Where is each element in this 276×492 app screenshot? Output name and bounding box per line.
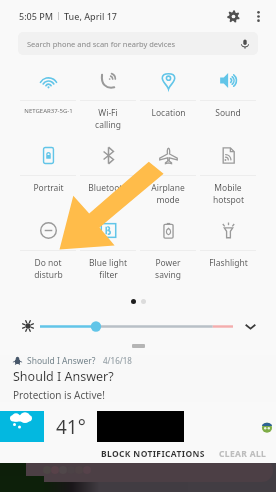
staticText: Bluetooth bbox=[88, 182, 128, 194]
button[interactable]: Portrait bbox=[18, 137, 78, 212]
staticText: 4/16/18 bbox=[103, 355, 132, 366]
button[interactable]: BLOCK NOTIFICATIONS bbox=[96, 445, 210, 463]
button[interactable]: Blue light bbox=[78, 212, 138, 287]
staticText: NETGEAR37-5G-1 bbox=[24, 107, 73, 115]
button[interactable]: Wi-Fi bbox=[78, 62, 138, 137]
staticText: 5:05 PM bbox=[19, 10, 53, 22]
button[interactable]: Sound bbox=[198, 62, 258, 137]
button[interactable]: Location bbox=[138, 62, 198, 137]
staticText: Search phone and scan for nearby devices bbox=[27, 39, 176, 49]
staticText: Location bbox=[151, 107, 186, 119]
staticText: Protection is Active! bbox=[13, 388, 105, 402]
staticText: Portrait bbox=[33, 182, 64, 194]
button[interactable]: Airplane bbox=[138, 137, 198, 212]
staticText: Do not bbox=[34, 257, 62, 269]
button[interactable]: CLEAR ALL bbox=[215, 445, 276, 463]
staticText: Should I Answer? bbox=[27, 355, 96, 366]
staticText: 41° bbox=[56, 414, 86, 440]
staticText: calling bbox=[95, 119, 121, 131]
staticText: Wi-Fi bbox=[98, 107, 118, 119]
button[interactable]: Do not bbox=[18, 212, 78, 287]
staticText: Flashlight bbox=[209, 257, 248, 269]
staticText: Sound bbox=[215, 107, 241, 119]
staticText: Should I Answer? bbox=[13, 368, 114, 385]
staticText: hotspot bbox=[213, 194, 244, 206]
button[interactable]: NETGEAR37-5G-1 bbox=[18, 62, 78, 137]
staticText: saving bbox=[155, 269, 181, 281]
button[interactable]: Flashlight bbox=[198, 212, 258, 287]
button[interactable]: Settings bbox=[220, 3, 246, 29]
staticText: Tue, April 17 bbox=[64, 10, 117, 22]
staticText: filter bbox=[99, 269, 118, 281]
staticText: BLOCK NOTIFICATIONS bbox=[101, 448, 205, 460]
staticText: mode bbox=[156, 194, 180, 206]
button[interactable]: Search phone and scan for nearby devices bbox=[18, 32, 258, 55]
button[interactable]: Expand bbox=[242, 318, 258, 334]
button[interactable]: Mobile bbox=[198, 137, 258, 212]
staticText: Airplane bbox=[151, 182, 185, 194]
staticText: Blue light bbox=[89, 257, 127, 269]
staticText: Power bbox=[155, 257, 181, 269]
button[interactable]: Power bbox=[138, 212, 198, 287]
staticText: Mobile bbox=[214, 182, 242, 194]
button[interactable]: Bluetooth bbox=[78, 137, 138, 212]
staticText: disturb bbox=[34, 269, 63, 281]
staticText: CLEAR ALL bbox=[219, 448, 267, 460]
button[interactable]: Should I Answer? bbox=[0, 355, 276, 402]
button[interactable]: More options bbox=[246, 4, 270, 28]
